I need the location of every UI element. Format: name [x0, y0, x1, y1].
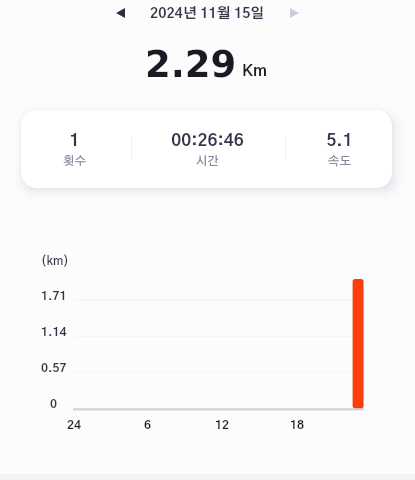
button[interactable]: 00:26:46: [132, 110, 283, 188]
staticText: 1: [18, 132, 131, 149]
button[interactable]: Next day: [281, 0, 307, 26]
staticText: 00:26:46: [132, 132, 283, 149]
staticText: 시간: [132, 155, 283, 167]
staticText: 0: [50, 398, 58, 410]
staticText: Km: [242, 63, 267, 79]
staticText: 속도: [286, 155, 393, 167]
staticText: 5.1: [286, 132, 393, 149]
staticText: 24: [67, 419, 82, 431]
staticText: 1.71: [41, 290, 67, 302]
staticText: 6: [144, 419, 152, 431]
button[interactable]: 1: [18, 110, 131, 188]
button[interactable]: 5.1: [286, 110, 393, 188]
staticText: 0.57: [41, 362, 67, 374]
button[interactable]: Previous day: [107, 0, 133, 26]
staticText: (km): [41, 255, 69, 267]
staticText: 18: [290, 419, 305, 431]
staticText: 1.14: [41, 326, 67, 338]
staticText: 횟수: [18, 155, 131, 167]
staticText: 2.29: [145, 43, 237, 86]
staticText: 2024년 11월 15일: [150, 7, 265, 21]
staticText: 12: [215, 419, 230, 431]
